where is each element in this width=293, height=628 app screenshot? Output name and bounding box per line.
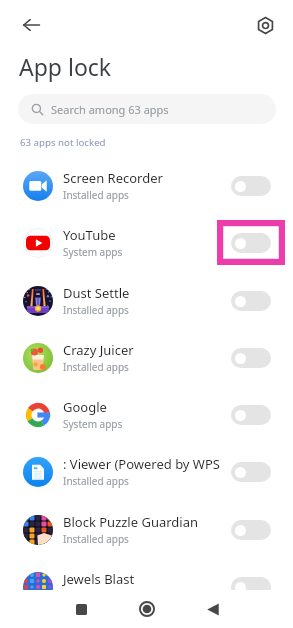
button[interactable]: Search among 63 apps	[18, 94, 276, 124]
staticText: : Viewer (Powered by WPS	[63, 455, 220, 473]
staticText: Installed apps	[63, 188, 129, 202]
button[interactable]: YouTube	[0, 214, 293, 271]
button[interactable]: Back	[13, 7, 49, 43]
staticText: Block Puzzle Guardian	[63, 513, 198, 531]
button[interactable]: Back	[180, 590, 246, 628]
staticText: Installed apps	[63, 474, 129, 488]
staticText: System apps	[63, 245, 123, 259]
staticText: System apps	[63, 417, 123, 431]
button[interactable]: Lock Jewels Blast	[231, 577, 271, 590]
button[interactable]: Screen Recorder	[0, 157, 293, 214]
staticText: App lock	[19, 51, 112, 82]
button[interactable]: Lock YouTube	[231, 233, 271, 253]
staticText: Installed apps	[63, 532, 129, 546]
button[interactable]: Lock Dust Settle	[231, 291, 271, 311]
button[interactable]: Lock Screen Recorder	[231, 176, 271, 196]
staticText: Dust Settle	[63, 284, 130, 302]
button[interactable]: Lock : Viewer (Powered by WPS	[231, 462, 271, 482]
button[interactable]: Settings	[248, 8, 282, 42]
button[interactable]: : Viewer (Powered by WPS	[0, 443, 293, 500]
staticText: 63 apps not locked	[20, 136, 106, 149]
staticText: Search among 63 apps	[51, 102, 169, 117]
staticText: Installed apps	[63, 303, 129, 317]
staticText: Installed apps	[63, 360, 129, 374]
button[interactable]: Lock Google	[231, 405, 271, 425]
button[interactable]: Google	[0, 386, 293, 443]
button[interactable]: Crazy Juicer	[0, 329, 293, 386]
staticText: YouTube	[63, 226, 116, 244]
button[interactable]: Home	[114, 590, 180, 628]
button[interactable]: Recent apps	[48, 590, 114, 628]
staticText: Google	[63, 398, 107, 416]
button[interactable]: Block Puzzle Guardian	[0, 501, 293, 558]
button[interactable]: Lock Block Puzzle Guardian	[231, 520, 271, 540]
button[interactable]: Dust Settle	[0, 272, 293, 329]
button[interactable]: Lock Crazy Juicer	[231, 348, 271, 368]
staticText: Jewels Blast	[63, 570, 135, 588]
button[interactable]: Jewels Blast	[0, 558, 293, 590]
staticText: Crazy Juicer	[63, 341, 134, 359]
staticText: Screen Recorder	[63, 169, 163, 187]
